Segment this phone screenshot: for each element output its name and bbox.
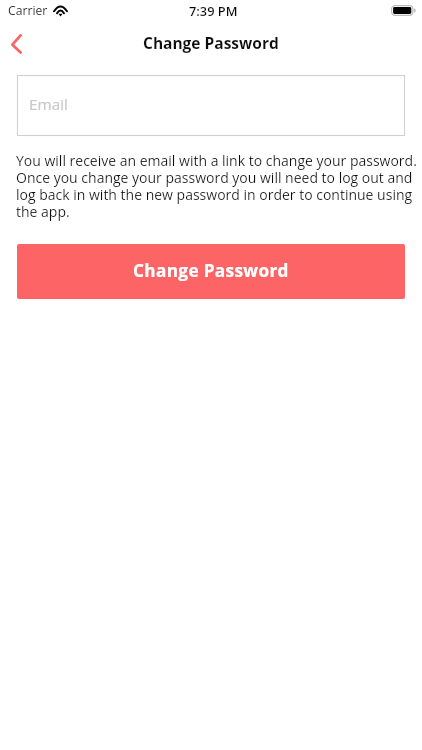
button[interactable]: Change Password xyxy=(17,244,405,299)
staticText: 7:39 PM xyxy=(189,2,238,19)
button[interactable]: Email xyxy=(17,75,405,136)
staticText: Email xyxy=(29,94,68,115)
button[interactable]: Back xyxy=(0,21,44,54)
staticText: Carrier xyxy=(8,2,48,19)
staticText: Change Password xyxy=(143,32,279,53)
staticText: Change Password xyxy=(133,259,289,282)
staticText: You will receive an email with a link to… xyxy=(16,151,417,221)
